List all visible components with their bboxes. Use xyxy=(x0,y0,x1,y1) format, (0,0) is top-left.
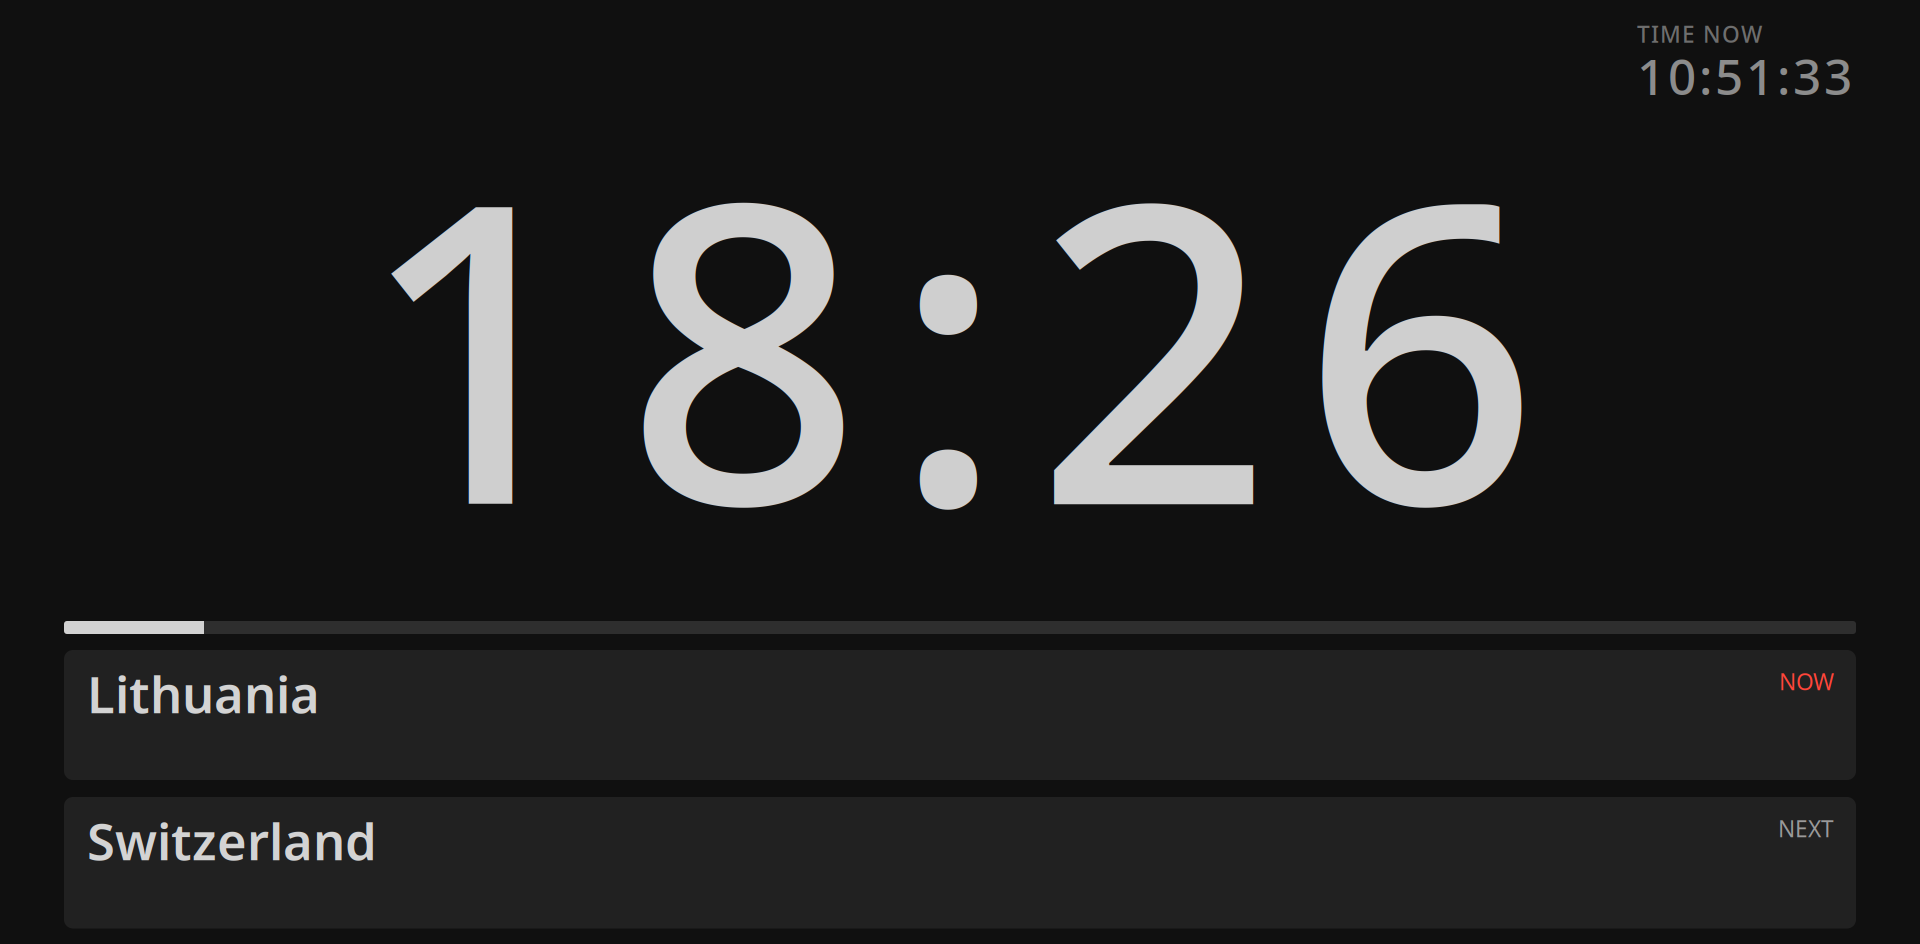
staticText: 18:26 xyxy=(358,67,1539,618)
staticText: TIME NOW xyxy=(1637,19,1762,49)
staticText: NOW xyxy=(1779,666,1834,697)
button[interactable]: Switzerland xyxy=(0,797,1920,928)
staticText: 10:51:33 xyxy=(1637,43,1852,108)
staticText: NEXT xyxy=(1778,813,1834,844)
button[interactable]: Lithuania xyxy=(0,650,1920,780)
staticText: Switzerland xyxy=(87,807,377,874)
staticText: Lithuania xyxy=(87,660,320,727)
